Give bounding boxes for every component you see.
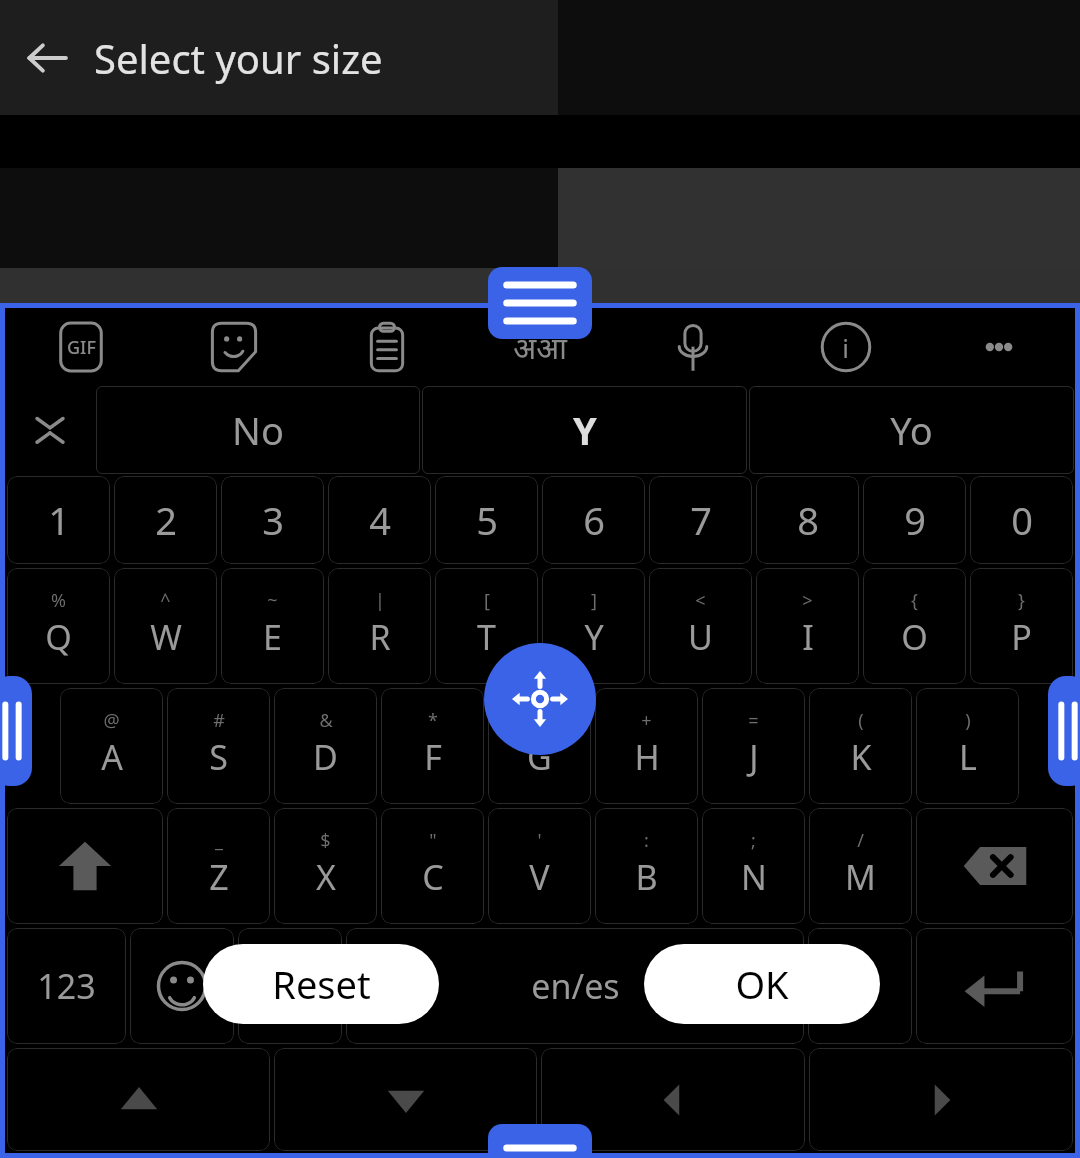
button[interactable]: 2 — [114, 476, 217, 564]
staticText: , — [285, 963, 295, 1009]
button[interactable]: en/es — [346, 928, 804, 1044]
button[interactable]: @ — [60, 688, 163, 804]
button[interactable]: # — [167, 688, 270, 804]
button[interactable]: Y — [422, 386, 747, 474]
button[interactable]: Resize keyboard height — [488, 267, 592, 339]
staticText: # — [213, 708, 225, 733]
button[interactable]: 123 — [7, 928, 126, 1044]
button[interactable]: Expand suggestions — [5, 386, 95, 474]
button[interactable]: Info — [769, 308, 922, 386]
staticText: Y — [573, 404, 597, 456]
button[interactable]: Resize keyboard right edge — [1048, 676, 1080, 786]
button[interactable]: Enter — [916, 928, 1073, 1044]
button[interactable]: , — [238, 928, 342, 1044]
button[interactable]: GIF — [5, 308, 157, 386]
other: right — [809, 1048, 1073, 1151]
button[interactable]: 5 — [435, 476, 538, 564]
button[interactable]: ) — [916, 688, 1019, 804]
button[interactable]: Resize keyboard bottom edge — [488, 1124, 592, 1158]
staticText: ] — [591, 588, 597, 613]
button[interactable]: ( — [809, 688, 912, 804]
button[interactable]: - — [488, 688, 591, 804]
button[interactable]: _ — [167, 808, 270, 924]
staticText: - — [537, 708, 543, 733]
button[interactable]: * — [381, 688, 484, 804]
button[interactable]: 7 — [649, 476, 752, 564]
button[interactable]: ] — [542, 568, 645, 684]
staticText: 8 — [797, 494, 819, 546]
button[interactable]: 6 — [542, 476, 645, 564]
button[interactable]: OK — [644, 944, 880, 1024]
button[interactable]: ~ — [221, 568, 324, 684]
button[interactable]: Yo — [749, 386, 1074, 474]
button[interactable]: . — [808, 928, 912, 1044]
staticText: J — [749, 734, 759, 780]
staticText: 0 — [1011, 494, 1033, 546]
button[interactable]: 9 — [863, 476, 966, 564]
other: Emoji — [130, 928, 234, 1044]
button[interactable]: Voice input — [616, 308, 769, 386]
staticText: X — [316, 854, 336, 900]
button[interactable]: $ — [274, 808, 377, 924]
staticText: ^ — [160, 588, 171, 613]
button[interactable]: { — [863, 568, 966, 684]
staticText: 5 — [476, 494, 498, 546]
button[interactable]: Change language — [463, 308, 616, 386]
button[interactable]: > — [756, 568, 859, 684]
staticText: Q — [45, 614, 72, 660]
button[interactable]: = — [702, 688, 805, 804]
button[interactable]: More options — [922, 308, 1075, 386]
button[interactable]: Reset — [203, 944, 439, 1024]
staticText: Y — [584, 614, 604, 660]
button[interactable]: left — [541, 1048, 805, 1151]
button[interactable]: 8 — [756, 476, 859, 564]
button[interactable]: < — [649, 568, 752, 684]
button[interactable]: Backspace — [916, 808, 1073, 924]
staticText: T — [477, 614, 496, 660]
button[interactable]: 4 — [328, 476, 431, 564]
staticText: % — [51, 588, 66, 613]
button[interactable]: Back — [14, 25, 80, 91]
button[interactable]: 0 — [970, 476, 1073, 564]
staticText: { — [911, 588, 918, 613]
button[interactable]: Move keyboard — [484, 643, 596, 755]
button[interactable]: [ — [435, 568, 538, 684]
button[interactable]: Clipboard — [310, 308, 463, 386]
button[interactable]: Emoji — [130, 928, 234, 1044]
staticText: R — [369, 614, 391, 660]
staticText: G — [527, 734, 552, 780]
button[interactable]: ^ — [114, 568, 217, 684]
staticText: 1 — [48, 494, 70, 546]
other: left — [541, 1048, 805, 1151]
button[interactable]: / — [809, 808, 912, 924]
button[interactable]: Resize keyboard left edge — [0, 676, 32, 786]
staticText: ; — [751, 828, 756, 853]
staticText: 7 — [690, 494, 712, 546]
button[interactable]: " — [381, 808, 484, 924]
staticText: Reset — [272, 958, 371, 1010]
button[interactable]: & — [274, 688, 377, 804]
button[interactable]: : — [595, 808, 698, 924]
staticText: S — [209, 734, 228, 780]
button[interactable]: ' — [488, 808, 591, 924]
button[interactable]: right — [809, 1048, 1073, 1151]
button[interactable]: } — [970, 568, 1073, 684]
staticText: H — [634, 734, 660, 780]
staticText: } — [1018, 588, 1025, 613]
staticText: OK — [735, 958, 789, 1010]
button[interactable]: | — [328, 568, 431, 684]
button[interactable]: Stickers — [157, 308, 310, 386]
button[interactable]: down — [274, 1048, 537, 1151]
button[interactable]: 1 — [7, 476, 110, 564]
button[interactable]: 3 — [221, 476, 324, 564]
other: Shift — [7, 808, 163, 924]
button[interactable]: + — [595, 688, 698, 804]
button[interactable]: No — [96, 386, 420, 474]
staticText: 4 — [369, 494, 391, 546]
button[interactable]: up — [7, 1048, 270, 1151]
button[interactable]: % — [7, 568, 110, 684]
staticText: M — [845, 854, 876, 900]
button[interactable]: Shift — [7, 808, 163, 924]
button[interactable]: ; — [702, 808, 805, 924]
